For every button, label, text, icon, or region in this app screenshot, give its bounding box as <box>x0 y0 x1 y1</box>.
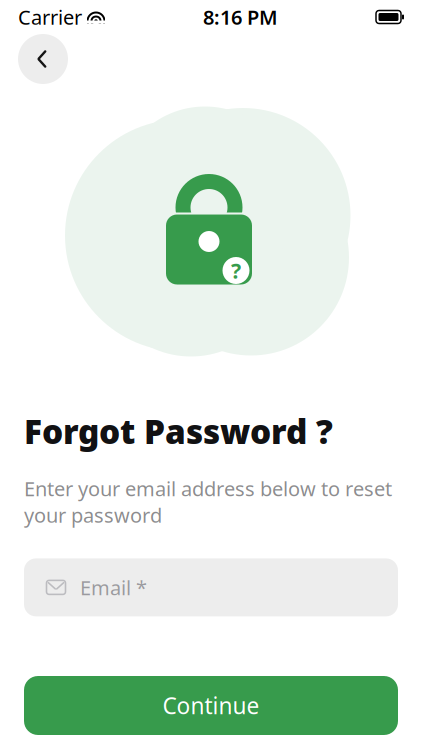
staticText: Forgot Password ? <box>24 409 333 453</box>
staticText: Enter your email address below to reset … <box>24 475 392 528</box>
staticText: Carrier <box>18 4 82 30</box>
button[interactable]: Back <box>18 34 68 84</box>
button[interactable]: Email * <box>24 558 398 616</box>
button[interactable]: Continue <box>24 676 398 735</box>
staticText: 8:16 PM <box>203 4 278 30</box>
staticText: Continue <box>162 690 259 720</box>
staticText: ? <box>231 256 241 285</box>
staticText: Email * <box>80 574 147 601</box>
